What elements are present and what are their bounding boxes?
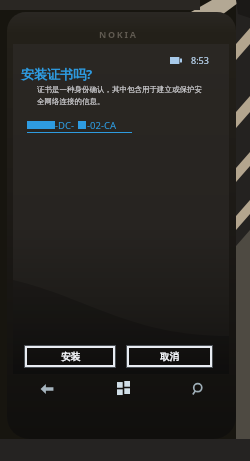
button[interactable]: 取消	[127, 346, 212, 367]
button[interactable]: Back	[33, 375, 61, 403]
staticText: -DC-	[55, 119, 75, 132]
button[interactable]: Certificate name	[27, 119, 134, 135]
staticText: 取消	[160, 351, 179, 363]
button[interactable]: 安装	[25, 346, 115, 367]
button[interactable]: Start	[109, 373, 137, 401]
staticText: 8:53	[191, 54, 209, 66]
staticText: -02-CA	[87, 119, 117, 132]
staticText: 安装	[61, 351, 80, 363]
staticText: 安装证书吗?	[21, 65, 93, 83]
staticText: 证书是一种身份确认，其中包含用于建立或保护安全网络连接的信息。	[37, 85, 207, 106]
staticText: NOKIA	[99, 28, 138, 40]
button[interactable]: Search	[183, 375, 211, 403]
